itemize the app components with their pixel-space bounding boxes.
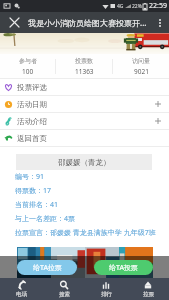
staticText: 拉票宣言：邵媛媛 青龙县满族中学 九年级7班 [15, 228, 156, 238]
staticText: 活动日期 [17, 100, 47, 109]
button[interactable]: 投票评选 [0, 79, 169, 95]
staticText: 得票数：17 [15, 186, 52, 196]
button[interactable]: 活动介绍 [0, 113, 169, 129]
button[interactable]: 给TA投票 [94, 260, 153, 275]
staticText: 排行 [101, 291, 112, 298]
staticText: 投票数 [75, 57, 93, 65]
staticText: 活动介绍 [17, 117, 47, 126]
staticText: 投票评选 [17, 83, 47, 92]
staticText: 4G [117, 3, 124, 10]
button[interactable]: 参与者 [0, 54, 55, 78]
staticText: 编号：91 [15, 172, 45, 182]
button[interactable]: 排行 [85, 278, 127, 300]
staticText: 电话 [16, 291, 27, 298]
staticText: 访问量 [132, 57, 150, 65]
button[interactable]: 给TA拉票 [17, 260, 77, 275]
button[interactable]: More options [150, 12, 169, 33]
staticText: 9021 [134, 67, 149, 76]
staticText: 参与者 [19, 57, 37, 65]
staticText: 11363 [75, 67, 94, 76]
button[interactable]: 返回首页 [0, 130, 169, 146]
staticText: 与上一名差距：4票 [15, 214, 76, 224]
button[interactable]: 活动日期 [0, 96, 169, 112]
button[interactable]: 投票数 [56, 54, 112, 78]
staticText: 给TA拉票 [33, 263, 62, 273]
staticText: 邵媛媛（青龙） [58, 158, 111, 167]
button[interactable]: 访问量 [113, 54, 169, 78]
staticText: 当前排名：41 [15, 200, 59, 210]
staticText: 22:59 [149, 1, 167, 11]
button[interactable]: Close [0, 12, 28, 33]
staticText: 拉票 [143, 291, 154, 298]
staticText: 22% [132, 3, 142, 10]
staticText: 搜索 [59, 291, 70, 298]
staticText: 100 [22, 67, 34, 76]
staticText: 返回首页 [17, 134, 47, 143]
staticText: 给TA投票 [109, 263, 138, 273]
button[interactable]: 搜索 [43, 278, 85, 300]
button[interactable]: 拉票 [127, 278, 169, 300]
staticText: 我是小小消防员绘图大赛投票开... [28, 17, 150, 28]
button[interactable]: 电话 [0, 278, 43, 300]
